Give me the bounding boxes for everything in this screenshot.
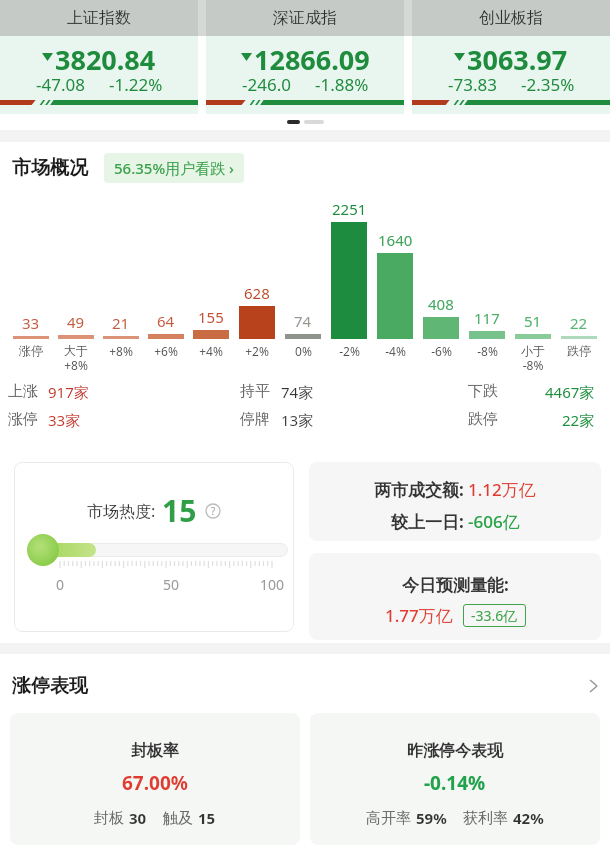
staticText: 3820.84: [55, 41, 156, 72]
staticText: 50: [163, 575, 180, 594]
staticText: 封板: [94, 809, 124, 828]
staticText: 74家: [281, 382, 314, 401]
staticText: +4%: [199, 343, 223, 359]
staticText: +2%: [245, 343, 269, 359]
staticText: 21: [112, 313, 130, 333]
staticText: 628: [244, 283, 270, 303]
staticText: +6%: [154, 343, 178, 359]
staticText: 上涨: [8, 382, 38, 401]
staticText: 上证指数: [67, 8, 131, 28]
staticText: 高开率: [366, 809, 411, 828]
staticText: 117: [474, 308, 500, 328]
staticText: 停牌: [240, 410, 270, 429]
staticText: 市场热度:: [87, 500, 156, 522]
staticText: 155: [198, 307, 224, 327]
button[interactable]: 56.35%用户看跌 ›: [104, 153, 244, 183]
staticText: -4%: [385, 343, 406, 359]
staticText: 涨停: [8, 410, 38, 429]
staticText: 67.00%: [122, 770, 188, 796]
staticText: -47.08: [36, 73, 85, 96]
staticText: 获利率: [463, 809, 508, 828]
staticText: 两市成交额:: [374, 478, 464, 501]
staticText: -2.35%: [521, 73, 575, 96]
staticText: 3063.97: [467, 41, 568, 72]
staticText: 封板率: [131, 741, 179, 761]
staticText: 408: [428, 294, 454, 314]
button[interactable]: 上证指数: [0, 0, 198, 114]
staticText: -1.88%: [315, 73, 369, 96]
button[interactable]: 深证成指: [206, 0, 404, 114]
staticText: ?: [211, 504, 216, 518]
staticText: 12866.09: [254, 41, 370, 72]
staticText: 4467家: [545, 382, 595, 401]
staticText: 持平: [240, 382, 270, 401]
staticText: 1.12万亿: [468, 478, 536, 501]
staticText: -2%: [339, 343, 360, 359]
staticText: 917家: [48, 382, 89, 401]
staticText: -73.83: [448, 73, 497, 96]
staticText: +8%: [109, 343, 133, 359]
staticText: 今日预测量能:: [402, 573, 509, 596]
staticText: -8%: [477, 343, 498, 359]
staticText: 15: [162, 490, 197, 531]
staticText: 大于 +8%: [64, 343, 88, 373]
staticText: 1.77万亿: [385, 604, 453, 627]
staticText: 22: [570, 313, 588, 333]
staticText: 昨涨停今表现: [407, 741, 503, 761]
staticText: 56.35%用户看跌 ›: [114, 158, 234, 178]
staticText: 42%: [513, 808, 544, 828]
button[interactable]: 涨停表现: [12, 674, 598, 698]
staticText: 49: [67, 312, 85, 332]
staticText: 市场概况: [12, 156, 88, 180]
button[interactable]: 昨涨停今表现: [310, 713, 600, 845]
staticText: 15: [198, 808, 216, 828]
staticText: 涨停表现: [12, 674, 88, 698]
staticText: 64: [157, 311, 175, 331]
staticText: -0.14%: [424, 770, 486, 796]
staticText: 30: [129, 808, 147, 828]
staticText: 创业板指: [479, 8, 543, 28]
button[interactable]: 创业板指: [412, 0, 610, 114]
staticText: 51: [524, 311, 542, 331]
staticText: 深证成指: [273, 8, 337, 28]
staticText: 2251: [332, 199, 367, 219]
staticText: 33家: [48, 410, 81, 429]
staticText: 触及: [163, 809, 193, 828]
staticText: -1.22%: [109, 73, 163, 96]
staticText: -6%: [431, 343, 452, 359]
button[interactable]: 市场热度:: [14, 462, 294, 632]
staticText: 0%: [295, 343, 312, 359]
staticText: 100: [260, 575, 285, 594]
staticText: -246.0: [242, 73, 291, 96]
button[interactable]: 封板率: [10, 713, 300, 845]
staticText: 跌停: [468, 410, 498, 429]
button[interactable]: 两市成交额:: [309, 462, 601, 541]
staticText: 59%: [416, 808, 447, 828]
staticText: 13家: [281, 410, 314, 429]
staticText: -33.6亿: [471, 606, 518, 625]
staticText: 1640: [378, 230, 413, 250]
staticText: 较上一日:: [391, 510, 464, 533]
staticText: 33: [22, 313, 40, 333]
staticText: 小于 -8%: [521, 343, 545, 373]
staticText: 0: [56, 575, 65, 594]
staticText: 下跌: [468, 382, 498, 401]
staticText: 22家: [562, 410, 595, 429]
staticText: 74: [294, 311, 312, 331]
staticText: 涨停: [19, 343, 43, 358]
staticText: 跌停: [567, 343, 591, 358]
button[interactable]: 今日预测量能:: [309, 553, 601, 640]
staticText: -606亿: [468, 510, 520, 533]
